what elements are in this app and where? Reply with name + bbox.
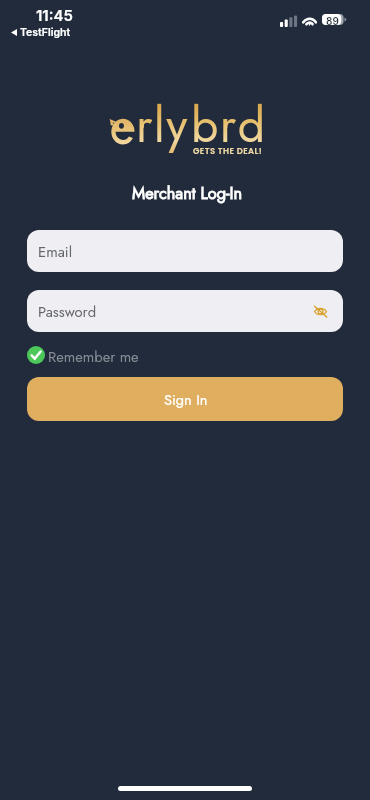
staticText: Sign In bbox=[164, 389, 208, 410]
staticText: Password bbox=[38, 301, 97, 322]
button[interactable]: Email bbox=[27, 230, 343, 272]
staticText: TestFlight bbox=[20, 26, 71, 39]
button[interactable]: Password bbox=[27, 290, 343, 332]
staticText: Remember me bbox=[48, 346, 139, 367]
staticText: 11:45 bbox=[36, 6, 73, 24]
button[interactable]: Show password bbox=[306, 297, 334, 325]
staticText: Email bbox=[38, 241, 73, 262]
button[interactable]: Sign In bbox=[27, 377, 343, 421]
staticText: Merchant Log-In bbox=[2, 182, 370, 206]
staticText: rly bbox=[136, 91, 189, 160]
staticText: brd bbox=[191, 91, 267, 160]
button[interactable]: Remember me bbox=[27, 344, 139, 365]
staticText: GETS THE DEAL! bbox=[193, 145, 263, 157]
staticText: 89 bbox=[326, 15, 339, 27]
